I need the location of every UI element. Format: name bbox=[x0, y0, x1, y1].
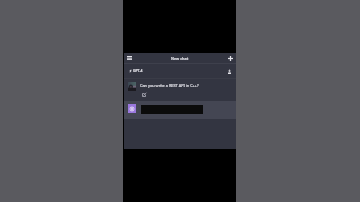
button[interactable]: New chat bbox=[225, 53, 236, 64]
staticText: Can you write a REST API in C++? bbox=[140, 83, 199, 88]
staticText: New chat bbox=[171, 56, 189, 61]
button[interactable]: Open menu bbox=[124, 53, 135, 64]
button[interactable]: Edit message bbox=[139, 90, 148, 99]
button[interactable]: Share conversation bbox=[225, 67, 234, 76]
staticText: GPT-4 bbox=[133, 68, 143, 73]
